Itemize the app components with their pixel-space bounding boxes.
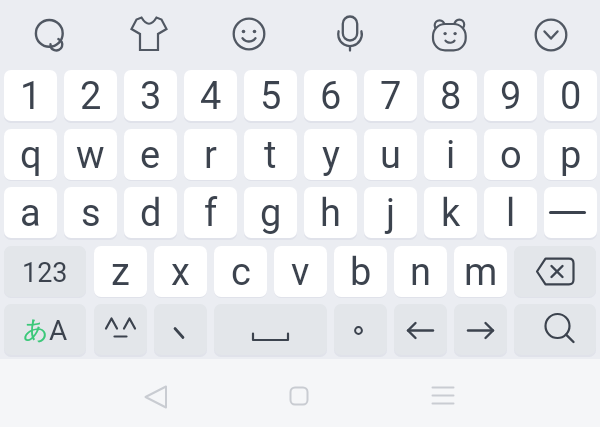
staticText: m: [464, 250, 498, 295]
button[interactable]: [454, 304, 507, 355]
button[interactable]: i: [424, 129, 477, 180]
staticText: z: [111, 250, 130, 295]
staticText: q: [20, 133, 42, 178]
staticText: l: [506, 191, 516, 236]
button[interactable]: [94, 304, 147, 355]
staticText: x: [171, 250, 190, 295]
staticText: i: [446, 133, 456, 178]
button[interactable]: d: [124, 187, 177, 238]
button[interactable]: 0: [544, 70, 597, 121]
staticText: A: [49, 314, 68, 347]
staticText: e: [140, 133, 161, 178]
button[interactable]: s: [64, 187, 117, 238]
button[interactable]: [221, 6, 277, 62]
button[interactable]: 2: [64, 70, 117, 121]
staticText: s: [81, 191, 101, 236]
button[interactable]: [131, 372, 181, 422]
button[interactable]: j: [364, 187, 417, 238]
button[interactable]: x: [154, 246, 207, 297]
button[interactable]: v: [274, 246, 327, 297]
staticText: 4: [200, 74, 222, 119]
button[interactable]: e: [124, 129, 177, 180]
button[interactable]: l: [484, 187, 537, 238]
button[interactable]: h: [304, 187, 357, 238]
staticText: 8: [440, 74, 462, 119]
staticText: p: [560, 133, 582, 178]
staticText: w: [76, 133, 105, 178]
button[interactable]: k: [424, 187, 477, 238]
button[interactable]: 1: [4, 70, 57, 121]
staticText: g: [260, 191, 282, 236]
button[interactable]: [394, 304, 447, 355]
staticText: c: [231, 250, 251, 295]
button[interactable]: m: [454, 246, 507, 297]
button[interactable]: [21, 5, 77, 61]
button[interactable]: [422, 6, 478, 62]
button[interactable]: 7: [364, 70, 417, 121]
staticText: あ: [23, 314, 49, 345]
button[interactable]: y: [304, 129, 357, 180]
button[interactable]: [523, 7, 579, 63]
staticText: o: [500, 133, 522, 178]
button[interactable]: [121, 5, 177, 61]
button[interactable]: q: [4, 129, 57, 180]
button[interactable]: u: [364, 129, 417, 180]
button[interactable]: o: [484, 129, 537, 180]
button[interactable]: [214, 304, 327, 355]
staticText: y: [322, 133, 340, 178]
staticText: f: [204, 191, 218, 236]
button[interactable]: 9: [484, 70, 537, 121]
button[interactable]: あ: [4, 304, 86, 355]
button[interactable]: [154, 304, 207, 355]
button[interactable]: c: [214, 246, 267, 297]
staticText: b: [350, 250, 372, 295]
button[interactable]: n: [394, 246, 447, 297]
button[interactable]: [418, 371, 468, 421]
staticText: v: [291, 250, 310, 295]
button[interactable]: f: [184, 187, 237, 238]
button[interactable]: g: [244, 187, 297, 238]
staticText: n: [410, 250, 431, 295]
button[interactable]: 123: [4, 246, 86, 297]
staticText: 2: [80, 74, 102, 119]
button[interactable]: 5: [244, 70, 297, 121]
staticText: r: [204, 133, 217, 178]
button[interactable]: z: [94, 246, 147, 297]
button[interactable]: w: [64, 129, 117, 180]
button[interactable]: 6: [304, 70, 357, 121]
staticText: a: [20, 191, 41, 236]
staticText: d: [140, 191, 162, 236]
staticText: 6: [320, 74, 342, 119]
button[interactable]: [334, 304, 387, 355]
button[interactable]: p: [544, 129, 597, 180]
button[interactable]: b: [334, 246, 387, 297]
staticText: 123: [22, 257, 68, 289]
staticText: t: [264, 133, 277, 178]
staticText: 7: [380, 74, 402, 119]
staticText: h: [320, 191, 341, 236]
button[interactable]: a: [4, 187, 57, 238]
staticText: j: [386, 191, 396, 236]
staticText: k: [441, 191, 461, 236]
staticText: 5: [260, 74, 282, 119]
staticText: 3: [140, 74, 162, 119]
staticText: 9: [500, 74, 522, 119]
button[interactable]: [544, 187, 597, 238]
button[interactable]: 3: [124, 70, 177, 121]
button[interactable]: [514, 246, 596, 297]
button[interactable]: [274, 371, 324, 421]
staticText: 0: [560, 74, 582, 119]
button[interactable]: [514, 304, 596, 355]
button[interactable]: 8: [424, 70, 477, 121]
staticText: u: [380, 133, 401, 178]
button[interactable]: 4: [184, 70, 237, 121]
button[interactable]: r: [184, 129, 237, 180]
staticText: 1: [20, 74, 42, 119]
button[interactable]: t: [244, 129, 297, 180]
button[interactable]: [322, 5, 378, 61]
